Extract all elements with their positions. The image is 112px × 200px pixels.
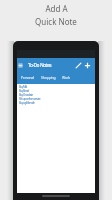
staticText: Shopping bbox=[41, 75, 56, 80]
button[interactable]: Buy Milk bbox=[19, 85, 95, 89]
staticText: Add A bbox=[45, 3, 68, 14]
staticText: Pickup car from service bbox=[19, 97, 41, 101]
staticText: Work bbox=[62, 75, 70, 80]
button[interactable]: Buy Bread bbox=[19, 89, 95, 93]
button[interactable]: Buy a gift for wife bbox=[19, 101, 95, 105]
button[interactable]: Pickup car from service bbox=[19, 97, 95, 101]
staticText: Buy Chocolate bbox=[19, 93, 33, 97]
staticText: Buy a gift for wife bbox=[19, 101, 35, 105]
staticText: Buy Bread bbox=[19, 89, 29, 93]
button[interactable]: Add note bbox=[84, 62, 91, 69]
button[interactable]: Personal bbox=[18, 75, 38, 80]
staticText: Buy Milk bbox=[19, 85, 27, 89]
staticText: To-Do Notes bbox=[28, 62, 52, 69]
button[interactable]: Shopping bbox=[38, 75, 59, 80]
staticText: Personal bbox=[21, 75, 35, 80]
staticText: Quick Note bbox=[35, 16, 77, 27]
button[interactable]: Open navigation menu bbox=[18, 63, 23, 68]
button[interactable]: Work bbox=[59, 75, 73, 80]
button[interactable]: Buy Chocolate bbox=[19, 93, 95, 97]
button[interactable]: Edit note bbox=[75, 62, 82, 69]
